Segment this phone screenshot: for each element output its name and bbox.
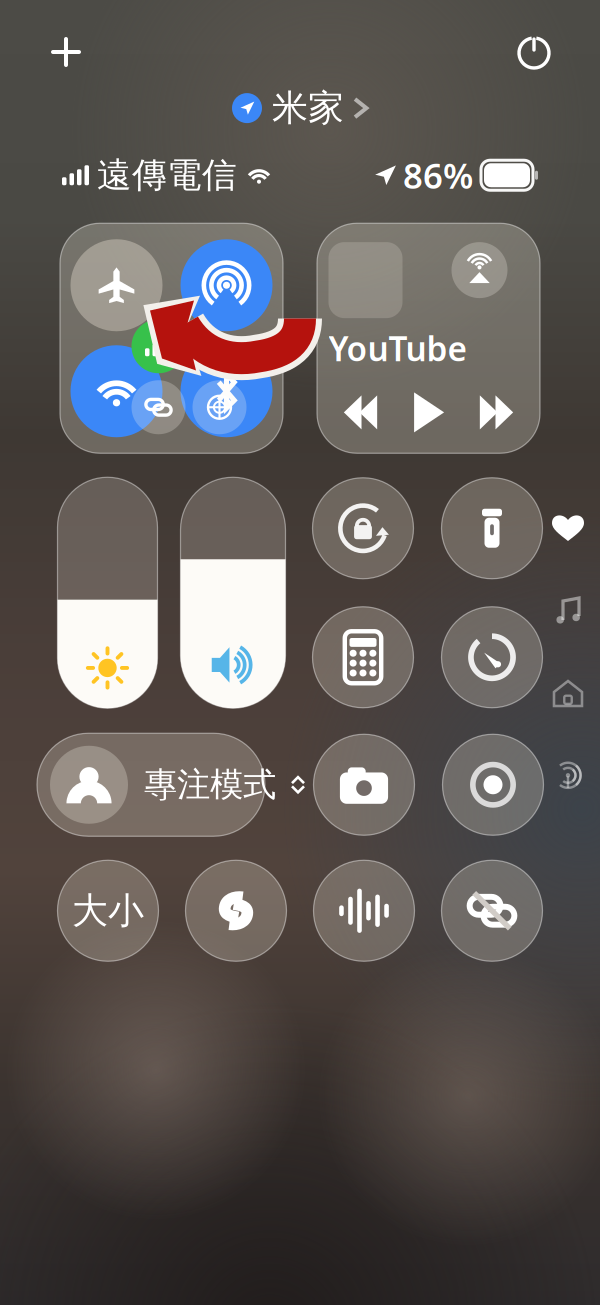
button[interactable]: VPN xyxy=(192,380,246,434)
button[interactable]: Text Size xyxy=(57,860,158,961)
button[interactable]: Power off xyxy=(506,24,562,80)
button[interactable]: Personal Hotspot xyxy=(131,380,185,434)
button[interactable]: Low Data Mode xyxy=(441,860,542,961)
button[interactable]: Add control xyxy=(38,24,94,80)
button[interactable]: AirPlay xyxy=(451,242,507,298)
button[interactable]: Wi-Fi xyxy=(70,345,162,437)
button[interactable]: Timer xyxy=(441,607,542,708)
button[interactable]: Cellular Data xyxy=(131,319,185,373)
button[interactable]: 米家 xyxy=(232,86,368,130)
staticText: 遠傳電信 xyxy=(97,154,237,196)
staticText: 大小 xyxy=(72,889,144,933)
button[interactable]: AirDrop xyxy=(180,239,272,331)
button[interactable]: Next xyxy=(466,390,526,434)
button[interactable]: Rotation Lock xyxy=(312,478,413,579)
button[interactable]: Play xyxy=(398,390,458,434)
staticText: 米家 xyxy=(272,86,344,130)
button[interactable]: Sound Recognition xyxy=(313,860,414,961)
button[interactable]: Brightness xyxy=(57,477,157,708)
button[interactable]: Music Recognition xyxy=(185,860,286,961)
button[interactable]: Screen Recording xyxy=(442,734,543,835)
button[interactable]: Focus xyxy=(56,733,284,836)
button[interactable]: Calculator xyxy=(312,607,413,708)
button[interactable]: Camera xyxy=(313,734,414,835)
button[interactable]: Previous xyxy=(330,390,390,434)
staticText: YouTube xyxy=(328,326,467,370)
button[interactable]: Bluetooth xyxy=(180,345,272,437)
button[interactable]: Volume xyxy=(180,477,285,708)
staticText: 86% xyxy=(403,152,473,198)
button[interactable]: Flashlight xyxy=(441,478,542,579)
staticText: 專注模式 xyxy=(144,764,276,805)
button[interactable]: Airplane Mode xyxy=(70,239,162,331)
